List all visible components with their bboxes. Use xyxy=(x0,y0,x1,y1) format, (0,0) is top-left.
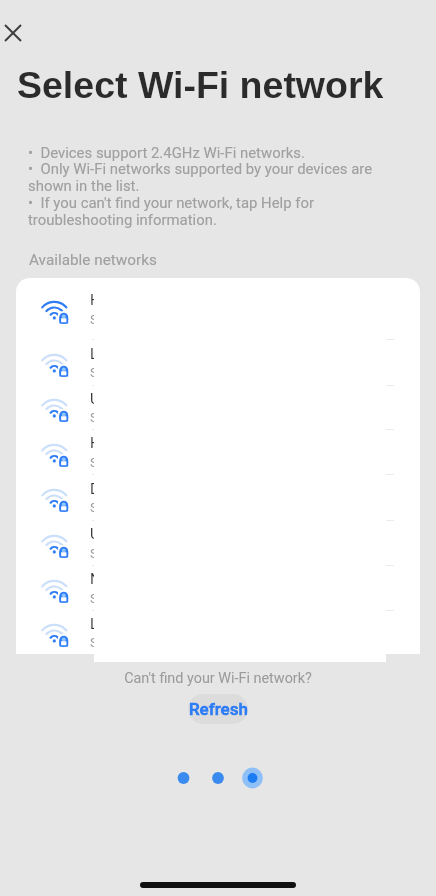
staticText: Lab-Router-24 xyxy=(90,615,184,633)
button[interactable] xyxy=(16,385,420,429)
staticText: Linksys_2.4GHz xyxy=(90,345,197,363)
button[interactable] xyxy=(16,565,420,610)
staticText: Home-5G-Network xyxy=(90,291,214,309)
staticText: Refresh xyxy=(189,699,248,719)
button[interactable] xyxy=(16,610,420,654)
button[interactable] xyxy=(16,339,420,385)
staticText: Neighbour-2G xyxy=(90,570,183,588)
staticText: Uplink-Guest xyxy=(90,390,175,408)
staticText: Downstairs-Ext xyxy=(90,480,191,498)
button[interactable]: Refresh xyxy=(188,694,248,724)
staticText: Secured xyxy=(90,410,138,425)
staticText: Select Wi-Fi network xyxy=(17,64,384,106)
staticText: Secured xyxy=(90,365,138,380)
staticText: Secured xyxy=(90,500,138,515)
staticText: Secured xyxy=(90,635,138,650)
staticText: Home-Office xyxy=(90,434,174,452)
staticText: Secured xyxy=(90,455,138,470)
staticText: Secured xyxy=(90,546,138,561)
staticText: Can't find your Wi-Fi network? xyxy=(0,670,436,687)
button[interactable] xyxy=(16,520,420,565)
button[interactable]: Close xyxy=(0,11,35,55)
staticText: Upstairs-Wifi xyxy=(90,525,175,543)
staticText: Secured xyxy=(90,312,138,327)
staticText: Available networks xyxy=(29,251,157,269)
button[interactable] xyxy=(16,474,420,520)
staticText: Secured xyxy=(90,591,138,606)
button[interactable] xyxy=(16,429,420,474)
button[interactable] xyxy=(16,278,420,339)
staticText: • Devices support 2.4GHz Wi-Fi networks.… xyxy=(28,144,418,229)
